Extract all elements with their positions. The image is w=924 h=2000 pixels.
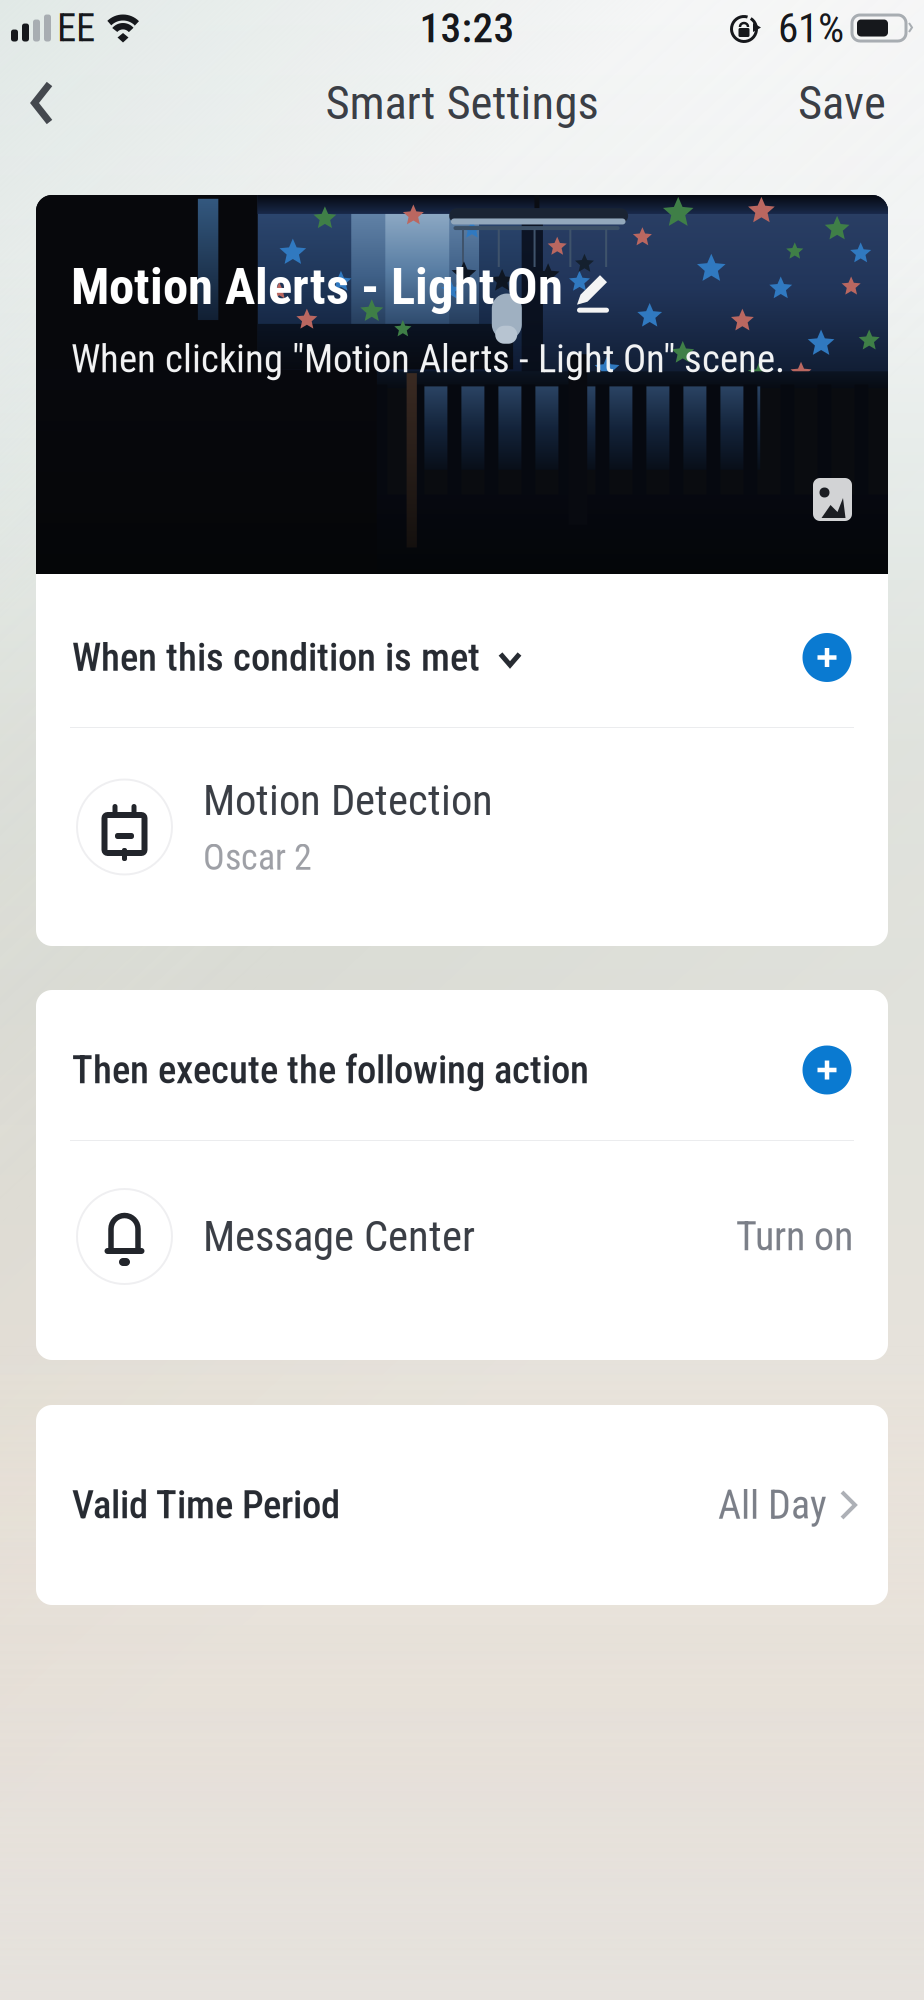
staticText: When this condition is met xyxy=(72,635,480,680)
button[interactable]: Valid Time Period xyxy=(36,1405,888,1605)
staticText: 61% xyxy=(778,4,844,52)
staticText: Smart Settings xyxy=(325,76,598,130)
staticText: EE xyxy=(57,5,95,51)
button[interactable]: Back xyxy=(6,56,78,150)
staticText: 13:23 xyxy=(419,4,514,52)
staticText: Oscar 2 xyxy=(203,836,312,879)
staticText: Then execute the following action xyxy=(72,1047,589,1093)
staticText: Save xyxy=(798,76,886,130)
button[interactable]: Add xyxy=(795,1038,859,1102)
button[interactable]: Add xyxy=(795,625,859,689)
button[interactable]: Rename scene xyxy=(573,266,611,308)
button[interactable]: Motion Detection xyxy=(36,728,888,946)
button[interactable]: Message Center xyxy=(36,1141,888,1360)
staticText: When clicking "Motion Alerts - Light On"… xyxy=(71,336,785,382)
staticText: Turn on xyxy=(736,1213,853,1260)
button[interactable]: Change cover image xyxy=(813,478,852,521)
staticText: Motion Alerts - Light On xyxy=(71,257,563,316)
staticText: All Day xyxy=(718,1482,827,1528)
staticText: Valid Time Period xyxy=(72,1482,340,1528)
button[interactable]: Save xyxy=(780,56,904,150)
staticText: Motion Detection xyxy=(203,775,493,825)
staticText: Message Center xyxy=(203,1211,475,1261)
